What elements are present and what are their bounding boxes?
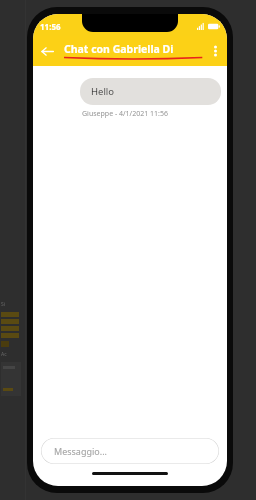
staticText: Hello [91,85,115,98]
button[interactable]: Back [33,37,61,65]
button[interactable]: Messaggio... [41,438,219,464]
button[interactable]: More options [203,39,227,63]
staticText: Messaggio... [54,445,107,457]
staticText: Chat con Gabriella Di Pris… [64,42,203,56]
button[interactable]: Chat con Gabriella Di Pris… [64,42,203,60]
staticText: Si [1,301,6,308]
staticText: Ac [1,351,7,358]
staticText: 11:56 [40,21,61,32]
button[interactable]: Hello [80,78,221,105]
staticText: Giuseppe - 4/1/2021 11:56 [82,109,168,119]
